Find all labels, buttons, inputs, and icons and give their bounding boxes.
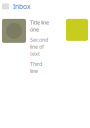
staticText: Inbox: [13, 2, 31, 11]
staticText: Second line of text: [30, 36, 48, 57]
staticText: Third line: [30, 60, 42, 74]
staticText: Title line one: [30, 19, 49, 33]
